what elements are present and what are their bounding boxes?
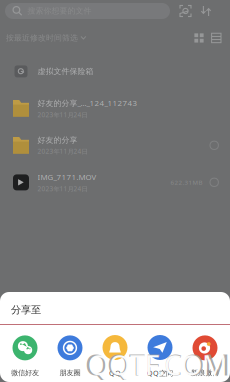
staticText: 好友的分享_..._124_112743: [37, 98, 137, 108]
button[interactable]: Scan: [180, 5, 191, 16]
button[interactable]: Grid view: [194, 33, 204, 43]
staticText: 分享至: [11, 304, 41, 316]
staticText: 新浪微博: [191, 368, 219, 377]
staticText: QQ空间: [147, 368, 173, 378]
button[interactable]: 朋友圈: [47, 335, 92, 377]
button[interactable]: List view: [212, 33, 221, 43]
button[interactable]: Sort: [201, 6, 211, 16]
button[interactable]: QQ: [92, 335, 137, 378]
button[interactable]: 新浪微博: [182, 335, 227, 377]
staticText: 搜索你想要的文件: [27, 6, 91, 16]
staticText: 好友的分享: [37, 135, 77, 145]
button[interactable]: 好友的分享_..._124_112743: [0, 90, 230, 127]
staticText: 按最近修改时间筛选: [6, 33, 78, 43]
button[interactable]: 按最近修改时间筛选: [6, 33, 86, 43]
staticText: QQTF.COM: [85, 345, 230, 382]
staticText: 虚拟文件保险箱: [37, 66, 93, 76]
staticText: IMG_7171.MOV: [37, 172, 96, 182]
staticText: 2023年11月24日: [37, 147, 87, 156]
staticText: 2023年11月24日: [37, 184, 87, 193]
button[interactable]: 微信好友: [2, 335, 47, 377]
staticText: QQ: [109, 368, 121, 378]
staticText: 微信好友: [11, 368, 39, 377]
button[interactable]: 好友的分享: [0, 127, 230, 164]
staticText: 622.31MB: [171, 178, 203, 187]
staticText: 朋友圈: [59, 368, 80, 377]
button[interactable]: IMG_7171.MOV: [0, 164, 230, 201]
staticText: 2023年11月24日: [37, 110, 87, 119]
button[interactable]: 虚拟文件保险箱: [0, 53, 230, 90]
staticText: QQTF.COM: [88, 346, 227, 382]
button[interactable]: QQ空间: [137, 335, 182, 378]
